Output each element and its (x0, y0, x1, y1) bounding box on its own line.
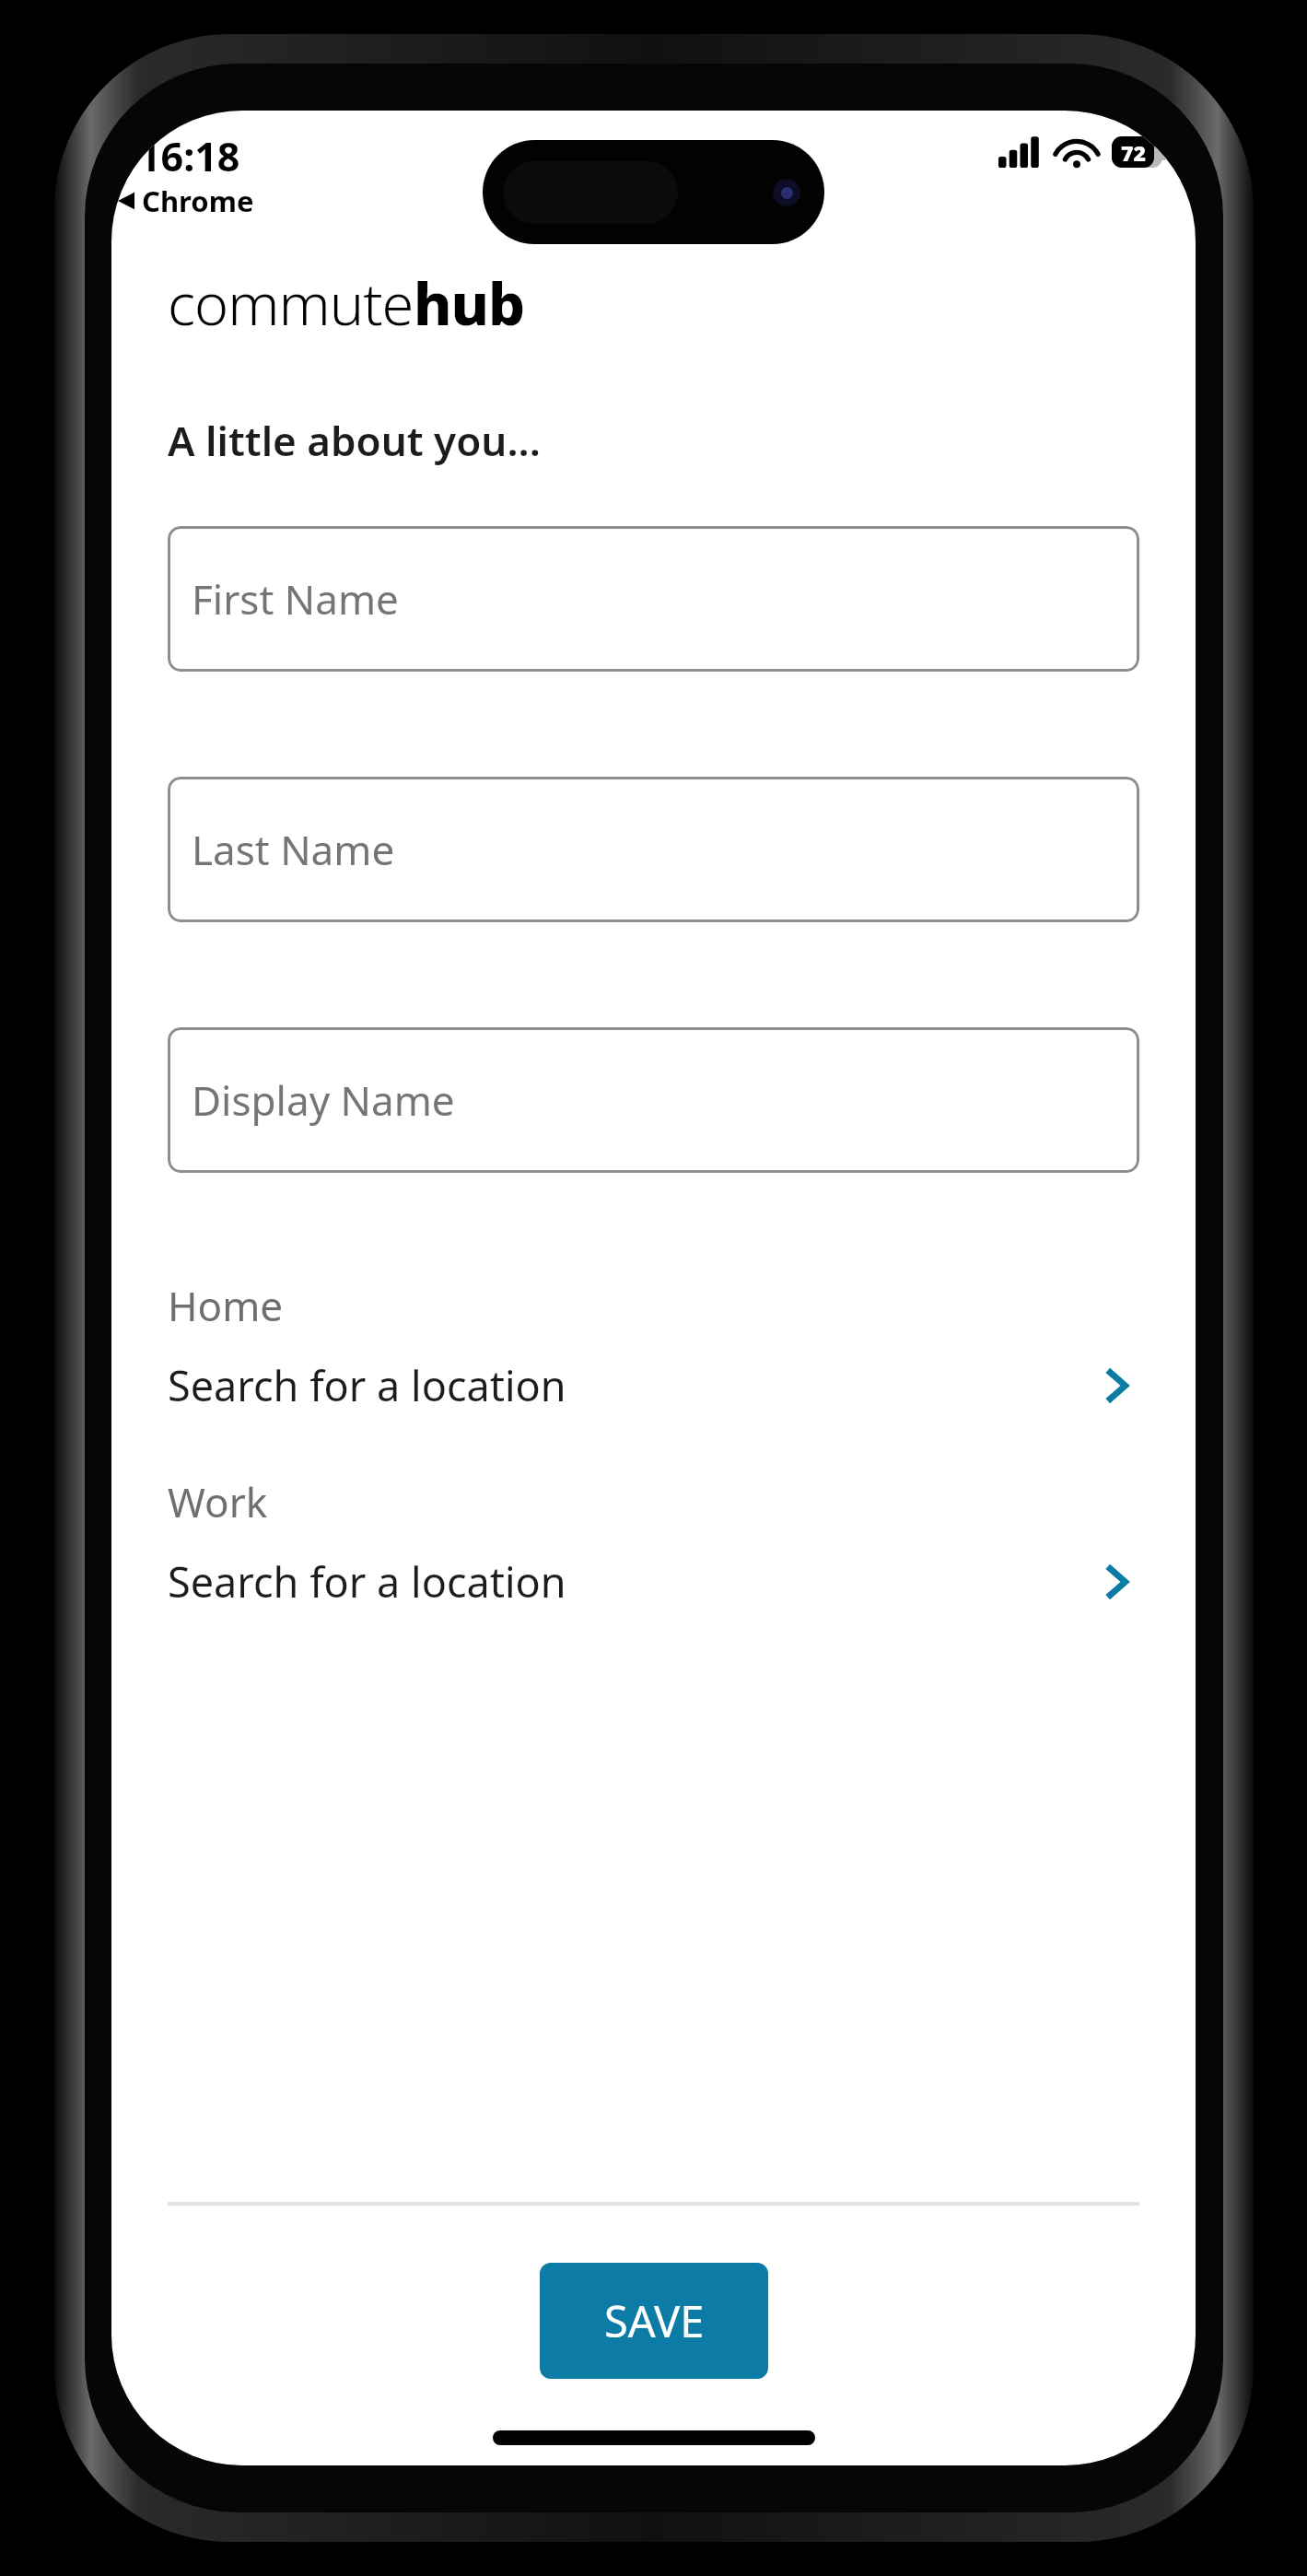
button[interactable]: Chrome (111, 180, 260, 222)
staticText: Search for a location (168, 1357, 566, 1413)
button[interactable]: Work (168, 1474, 1139, 1610)
button[interactable]: SAVE (540, 2263, 768, 2379)
staticText: Chrome (142, 181, 254, 220)
other: Choose Home location (1095, 1364, 1139, 1408)
staticText: commute (168, 263, 414, 343)
staticText: Search for a location (168, 1553, 566, 1610)
button[interactable]: Display Name (168, 1027, 1139, 1173)
staticText: 16:18 (138, 129, 240, 183)
other: Choose Work location (1095, 1560, 1139, 1604)
staticText: SAVE (604, 2291, 705, 2350)
staticText: Home (168, 1278, 284, 1333)
staticText: Last Name (192, 822, 395, 877)
staticText: Work (168, 1474, 268, 1529)
staticText: A little about you... (168, 413, 541, 468)
staticText: hub (414, 263, 525, 343)
button[interactable]: Last Name (168, 777, 1139, 922)
button[interactable]: First Name (168, 526, 1139, 672)
staticText: Display Name (192, 1072, 455, 1128)
staticText: First Name (192, 571, 399, 626)
staticText: 72 (1121, 138, 1146, 167)
button[interactable]: Home (168, 1278, 1139, 1413)
